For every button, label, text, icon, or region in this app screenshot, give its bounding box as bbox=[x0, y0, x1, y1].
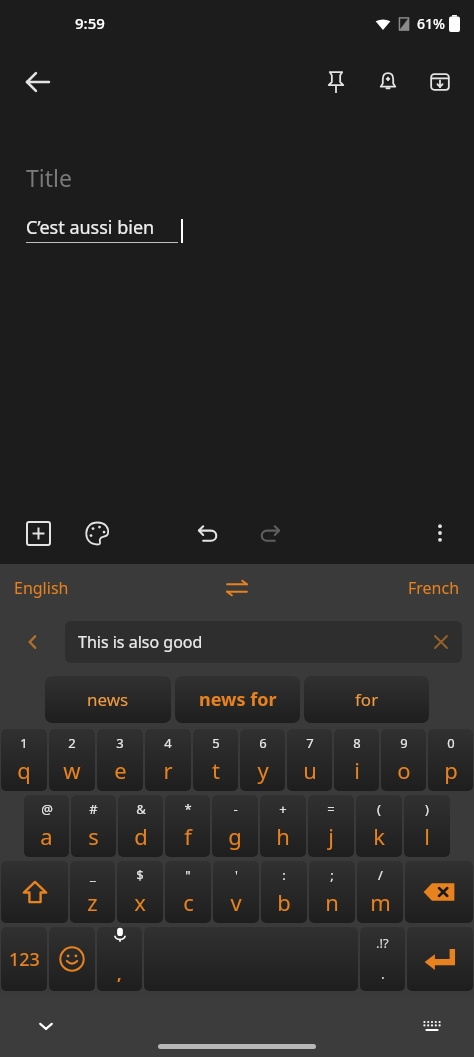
button[interactable]: English bbox=[14, 577, 69, 599]
button[interactable]: .!? bbox=[360, 927, 405, 991]
staticText: ; bbox=[330, 866, 334, 884]
staticText: w bbox=[63, 755, 81, 785]
staticText: .!? bbox=[376, 934, 389, 952]
button[interactable]: # bbox=[71, 795, 116, 857]
button[interactable]: 9 bbox=[381, 729, 426, 791]
button[interactable]: 8 bbox=[334, 729, 379, 791]
staticText: news bbox=[87, 688, 129, 711]
button[interactable]: ( bbox=[356, 795, 402, 857]
staticText: l bbox=[424, 821, 430, 851]
staticText: & bbox=[136, 800, 146, 818]
button[interactable]: Swap languages bbox=[215, 566, 259, 610]
button[interactable]: + bbox=[260, 795, 306, 857]
button[interactable]: Emoji bbox=[49, 927, 95, 991]
button[interactable]: French bbox=[408, 577, 460, 599]
button[interactable]: Add bbox=[16, 511, 60, 555]
button[interactable]: Back bbox=[14, 58, 62, 106]
staticText: n bbox=[325, 887, 339, 917]
staticText: u bbox=[303, 755, 317, 785]
staticText: 1 bbox=[20, 734, 28, 752]
button[interactable]: 123 bbox=[1, 927, 47, 991]
button[interactable]: news for bbox=[175, 676, 300, 723]
staticText: 9 bbox=[400, 734, 408, 752]
staticText: o bbox=[397, 755, 411, 785]
staticText: z bbox=[87, 887, 98, 917]
staticText: + bbox=[279, 800, 287, 818]
button[interactable]: & bbox=[118, 795, 163, 857]
button[interactable]: Undo bbox=[186, 511, 230, 555]
staticText: p bbox=[444, 755, 458, 785]
button[interactable]: ; bbox=[309, 861, 355, 923]
staticText: 7 bbox=[306, 734, 314, 752]
staticText: x bbox=[134, 887, 146, 917]
staticText: d bbox=[134, 821, 148, 851]
staticText: # bbox=[89, 800, 98, 818]
staticText: y bbox=[257, 755, 269, 785]
button[interactable]: Redo bbox=[248, 511, 292, 555]
button[interactable]: Shift bbox=[1, 861, 68, 923]
staticText: b bbox=[277, 887, 291, 917]
button[interactable]: Pin bbox=[310, 56, 362, 108]
button[interactable]: 6 bbox=[240, 729, 285, 791]
staticText: s bbox=[88, 821, 99, 851]
button[interactable]: news bbox=[45, 676, 171, 723]
button[interactable]: Backspace bbox=[405, 861, 473, 923]
staticText: 4 bbox=[164, 734, 172, 752]
button[interactable]: for bbox=[304, 676, 429, 723]
staticText: ) bbox=[425, 800, 429, 818]
staticText: . bbox=[381, 964, 385, 983]
staticText: 123 bbox=[9, 947, 40, 972]
button[interactable]: @ bbox=[24, 795, 69, 857]
button[interactable]: * bbox=[165, 795, 210, 857]
button[interactable]: Color palette bbox=[75, 511, 119, 555]
button[interactable]: / bbox=[357, 861, 403, 923]
staticText: This is also good bbox=[78, 631, 203, 653]
staticText: c bbox=[183, 887, 194, 917]
staticText: 0 bbox=[447, 734, 455, 752]
button[interactable]: = bbox=[308, 795, 354, 857]
button[interactable]: Voice input bbox=[97, 927, 142, 991]
staticText: 3 bbox=[116, 734, 124, 752]
staticText: * bbox=[184, 800, 192, 818]
staticText: 8 bbox=[353, 734, 361, 752]
staticText: for bbox=[355, 688, 379, 711]
button[interactable]: $ bbox=[117, 861, 163, 923]
button[interactable]: More options bbox=[418, 511, 462, 555]
button[interactable]: 3 bbox=[97, 729, 143, 791]
button[interactable]: Back bbox=[0, 612, 65, 672]
staticText: f bbox=[184, 821, 192, 851]
staticText: 2 bbox=[68, 734, 76, 752]
button[interactable]: Enter bbox=[407, 927, 473, 991]
button[interactable]: Change keyboard bbox=[410, 1004, 454, 1048]
button[interactable]: 5 bbox=[193, 729, 238, 791]
staticText: $ bbox=[136, 866, 144, 884]
staticText: t bbox=[212, 755, 220, 785]
button[interactable]: 4 bbox=[145, 729, 191, 791]
staticText: 61% bbox=[417, 14, 445, 33]
button[interactable]: _ bbox=[70, 861, 115, 923]
staticText: i bbox=[354, 755, 360, 785]
staticText: : bbox=[282, 866, 286, 884]
staticText: k bbox=[373, 821, 385, 851]
button[interactable]: 7 bbox=[287, 729, 332, 791]
button[interactable]: Hide keyboard bbox=[24, 1004, 68, 1048]
button[interactable]: ) bbox=[404, 795, 450, 857]
button[interactable]: Add reminder bbox=[362, 56, 414, 108]
button[interactable]: 2 bbox=[49, 729, 95, 791]
button[interactable]: " bbox=[165, 861, 211, 923]
button[interactable]: Archive bbox=[414, 56, 466, 108]
button[interactable]: Space bbox=[144, 927, 358, 991]
button[interactable]: : bbox=[261, 861, 307, 923]
staticText: news for bbox=[199, 687, 277, 712]
staticText: 6 bbox=[259, 734, 267, 752]
button[interactable]: Title bbox=[26, 162, 72, 193]
staticText: g bbox=[228, 821, 242, 851]
button[interactable]: 0 bbox=[428, 729, 473, 791]
button[interactable]: This is also good bbox=[65, 621, 462, 663]
button[interactable]: C’est aussi bien bbox=[26, 215, 178, 243]
button[interactable]: - bbox=[212, 795, 258, 857]
button[interactable]: ' bbox=[213, 861, 259, 923]
button[interactable]: Clear bbox=[426, 627, 456, 657]
button[interactable]: 1 bbox=[1, 729, 47, 791]
staticText: m bbox=[370, 887, 391, 917]
